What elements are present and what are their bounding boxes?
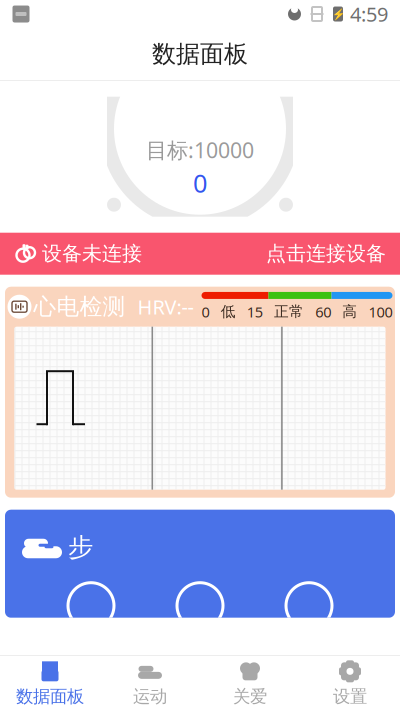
button[interactable]: 心电检测 bbox=[5, 287, 395, 498]
staticText: 0 bbox=[201, 302, 209, 321]
staticText: 点击连接设备 bbox=[266, 241, 386, 266]
button[interactable]: 设备未连接 bbox=[0, 233, 400, 275]
staticText: 正常 bbox=[274, 303, 304, 321]
staticText: 15 bbox=[247, 302, 263, 321]
staticText: 0 bbox=[193, 166, 207, 200]
button[interactable]: 运动 bbox=[100, 657, 200, 709]
staticText: 60 bbox=[315, 302, 331, 321]
staticText: 设置 bbox=[333, 686, 367, 707]
staticText: 设备未连接 bbox=[42, 241, 142, 266]
button[interactable]: 数据面板 bbox=[0, 657, 100, 709]
staticText: ⚡ bbox=[331, 8, 344, 20]
staticText: HRV:-- bbox=[137, 293, 193, 320]
staticText: 数据面板 bbox=[152, 39, 248, 69]
staticText: 数据面板 bbox=[16, 686, 84, 707]
staticText: 100 bbox=[368, 302, 392, 321]
button[interactable]: 步 bbox=[5, 510, 395, 618]
staticText: 心电检测 bbox=[33, 293, 125, 321]
staticText: 4:59 bbox=[350, 1, 388, 27]
button[interactable]: 设置 bbox=[300, 657, 400, 709]
staticText: 步 bbox=[68, 532, 93, 563]
staticText: 关爱 bbox=[233, 686, 267, 707]
staticText: 高 bbox=[342, 303, 357, 321]
staticText: 目标:10000 bbox=[146, 136, 254, 164]
button[interactable]: 关爱 bbox=[200, 657, 300, 709]
staticText: 运动 bbox=[133, 686, 167, 707]
staticText: 低 bbox=[221, 303, 236, 321]
